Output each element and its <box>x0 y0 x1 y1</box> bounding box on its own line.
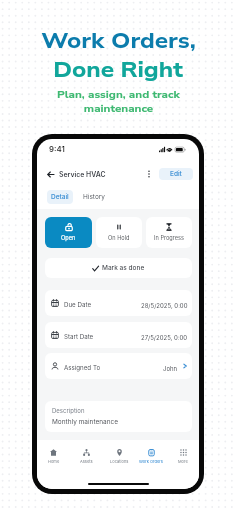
button[interactable]: More <box>167 440 199 472</box>
staticText: Locations <box>110 459 129 464</box>
staticText: Plan, assign, and track maintenance <box>57 88 180 116</box>
button[interactable]: Due Date <box>45 290 192 316</box>
button[interactable]: In Progress <box>146 217 192 248</box>
staticText: Home <box>48 459 60 464</box>
button[interactable]: Back <box>43 167 57 181</box>
button[interactable]: Open <box>45 217 92 248</box>
staticText: Description <box>52 407 85 414</box>
staticText: Open <box>61 235 76 242</box>
staticText: Detail <box>51 193 69 201</box>
staticText: 27/5/2025, 0:00 <box>141 334 188 341</box>
button[interactable]: Work Orders <box>135 440 167 472</box>
staticText: Due Date <box>64 301 91 309</box>
staticText: Start Date <box>64 333 94 341</box>
button[interactable]: Home <box>37 440 70 472</box>
button[interactable]: Locations <box>103 440 135 472</box>
staticText: Work Orders <box>139 459 163 464</box>
staticText: 9:41 <box>49 144 65 153</box>
button[interactable]: Edit <box>159 168 193 180</box>
button[interactable]: Mark as done <box>45 258 192 278</box>
staticText: More <box>178 459 188 464</box>
staticText: In Progress <box>154 235 184 242</box>
button[interactable]: More options <box>143 168 155 180</box>
staticText: Assigned To <box>64 364 101 372</box>
staticText: On Hold <box>108 235 130 242</box>
button[interactable]: History <box>80 190 108 204</box>
staticText: Service HVAC <box>59 170 106 178</box>
button[interactable]: Start Date <box>45 322 192 348</box>
staticText: Work Orders, <box>41 27 196 56</box>
staticText: Monthly maintenance <box>52 418 119 426</box>
staticText: Mark as done <box>102 264 145 272</box>
staticText: Edit <box>170 170 182 178</box>
button[interactable]: On Hold <box>96 217 142 248</box>
staticText: History <box>83 193 105 201</box>
staticText: 28/5/2025, 0:00 <box>141 302 188 309</box>
staticText: Assets <box>80 459 93 464</box>
button[interactable]: Assets <box>70 440 103 472</box>
staticText: John <box>163 365 178 372</box>
staticText: Done Right <box>53 56 183 85</box>
button[interactable]: Assigned To <box>45 353 192 379</box>
button[interactable]: Detail <box>47 190 73 204</box>
